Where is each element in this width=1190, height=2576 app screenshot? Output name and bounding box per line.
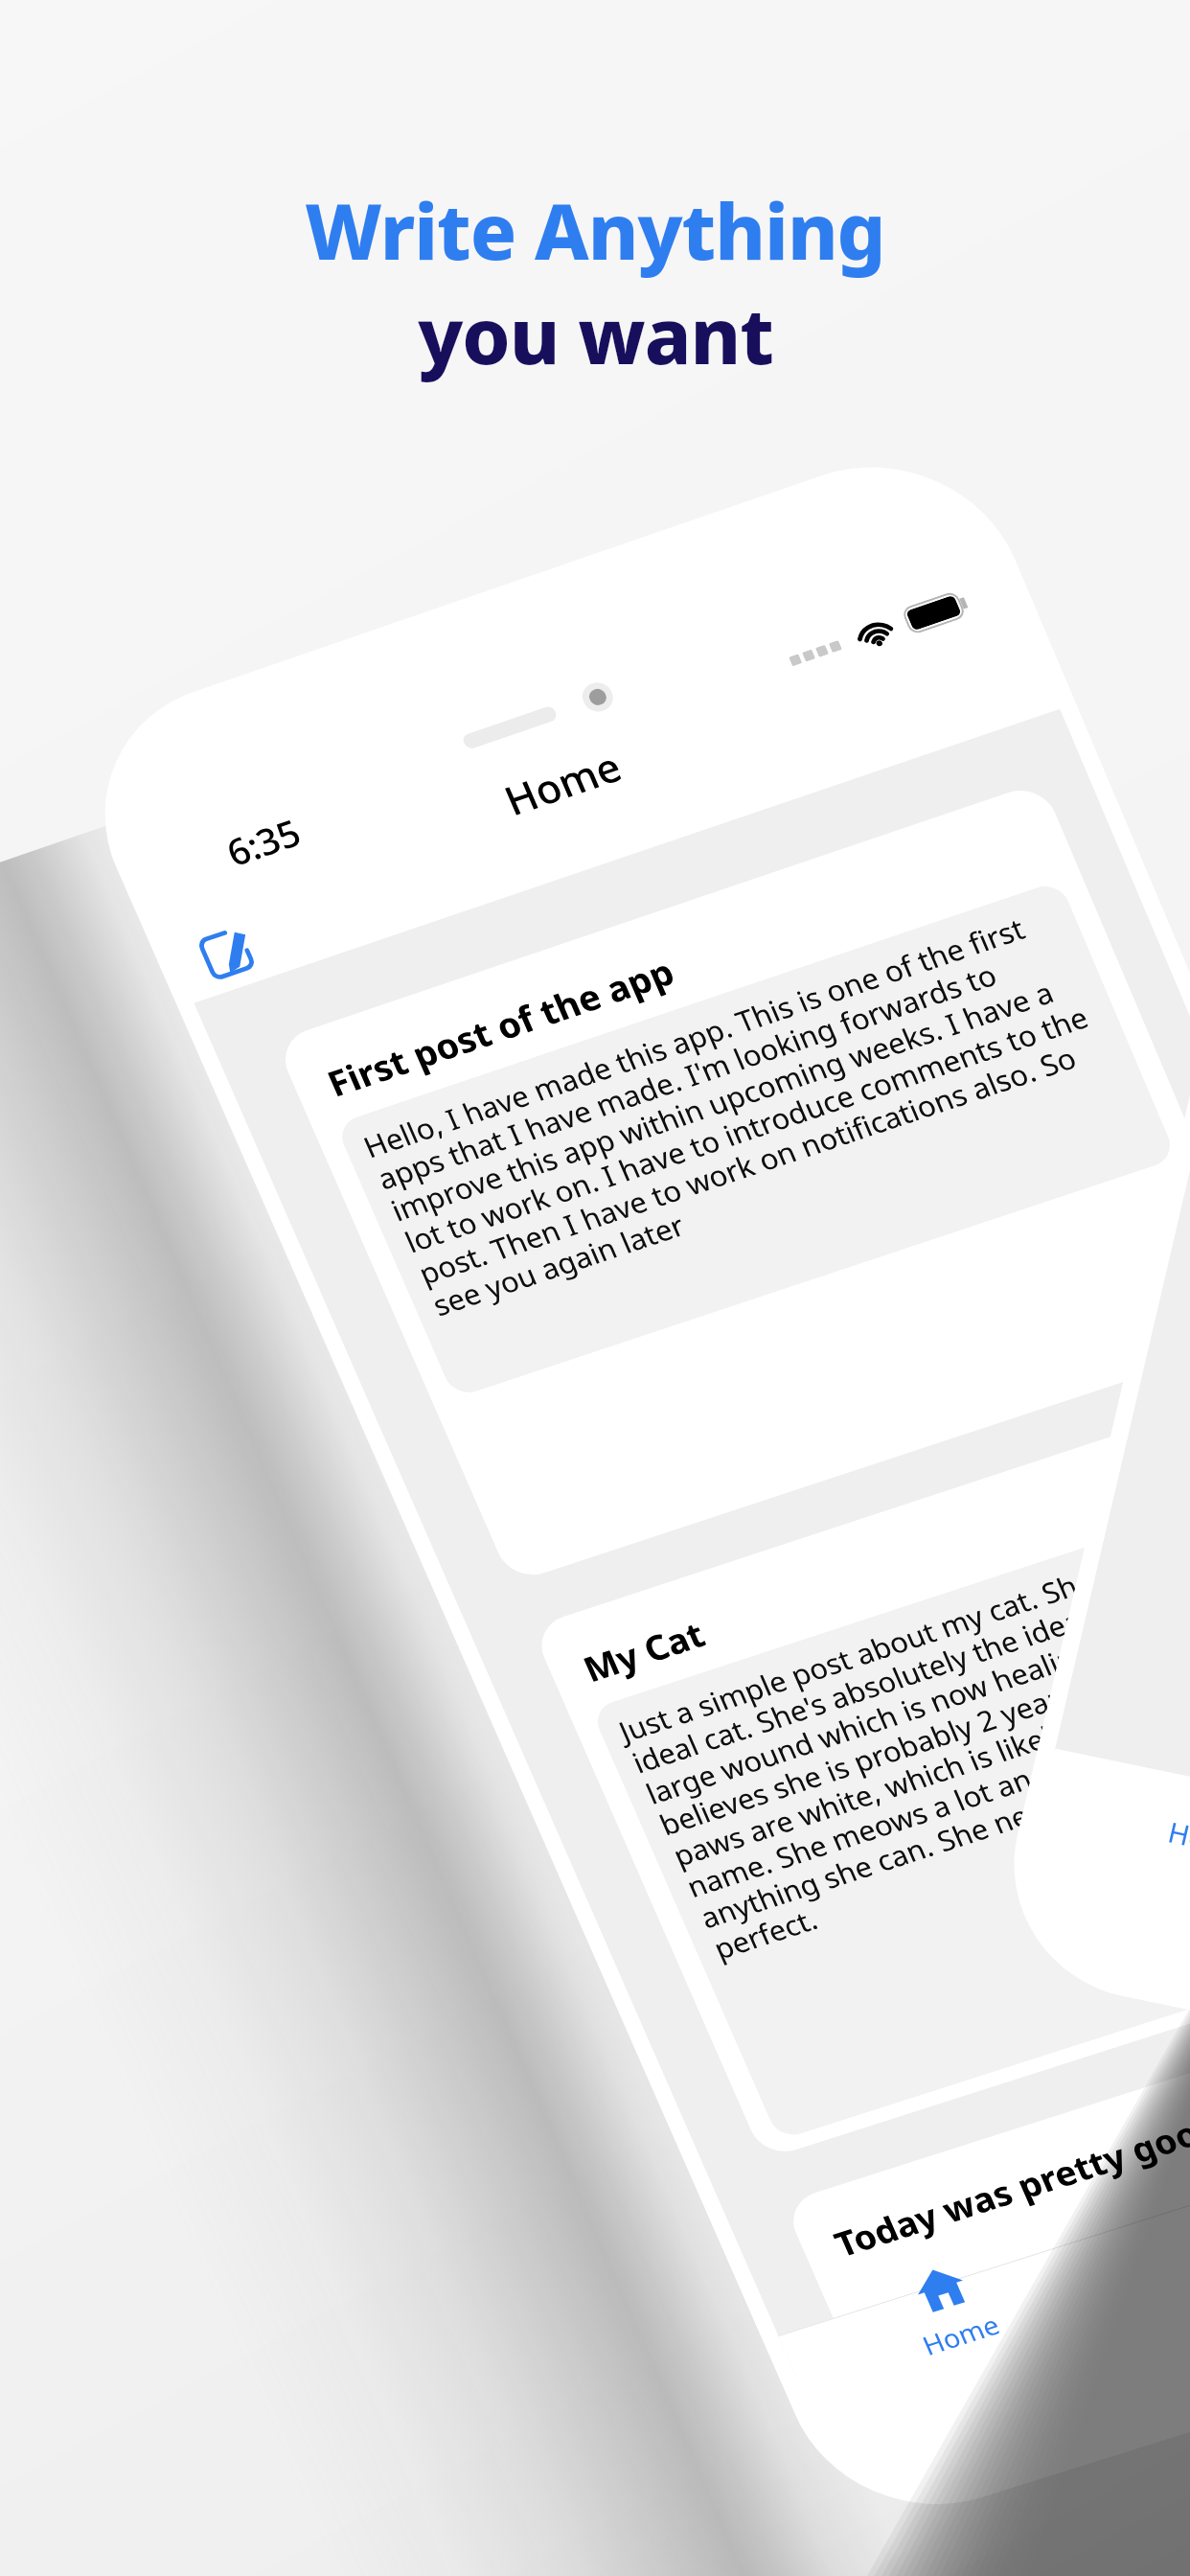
- staticText: My Cat: [576, 1610, 712, 1692]
- button[interactable]: Home: [894, 2253, 1005, 2363]
- button[interactable]: First post of the app: [274, 781, 1190, 1584]
- staticText: Home: [917, 2307, 1005, 2363]
- staticText: Write Anything: [305, 177, 885, 282]
- button[interactable]: Today was pretty good: [783, 1961, 1190, 2362]
- staticText: Home: [496, 738, 629, 827]
- button[interactable]: My Cat: [531, 1376, 1190, 2160]
- staticText: you want: [418, 282, 773, 386]
- staticText: Hello, I have made this app. This is one…: [357, 898, 1130, 1324]
- button[interactable]: Compose new post: [185, 913, 267, 988]
- staticText: First post of the app: [320, 947, 681, 1107]
- staticText: Home: [1165, 1813, 1190, 1866]
- button[interactable]: Home: [1165, 1753, 1190, 1866]
- staticText: Just a simple post about my cat. She's a…: [613, 1490, 1190, 1967]
- staticText: Today was pretty good: [827, 2102, 1190, 2266]
- staticText: 6:35: [218, 807, 308, 876]
